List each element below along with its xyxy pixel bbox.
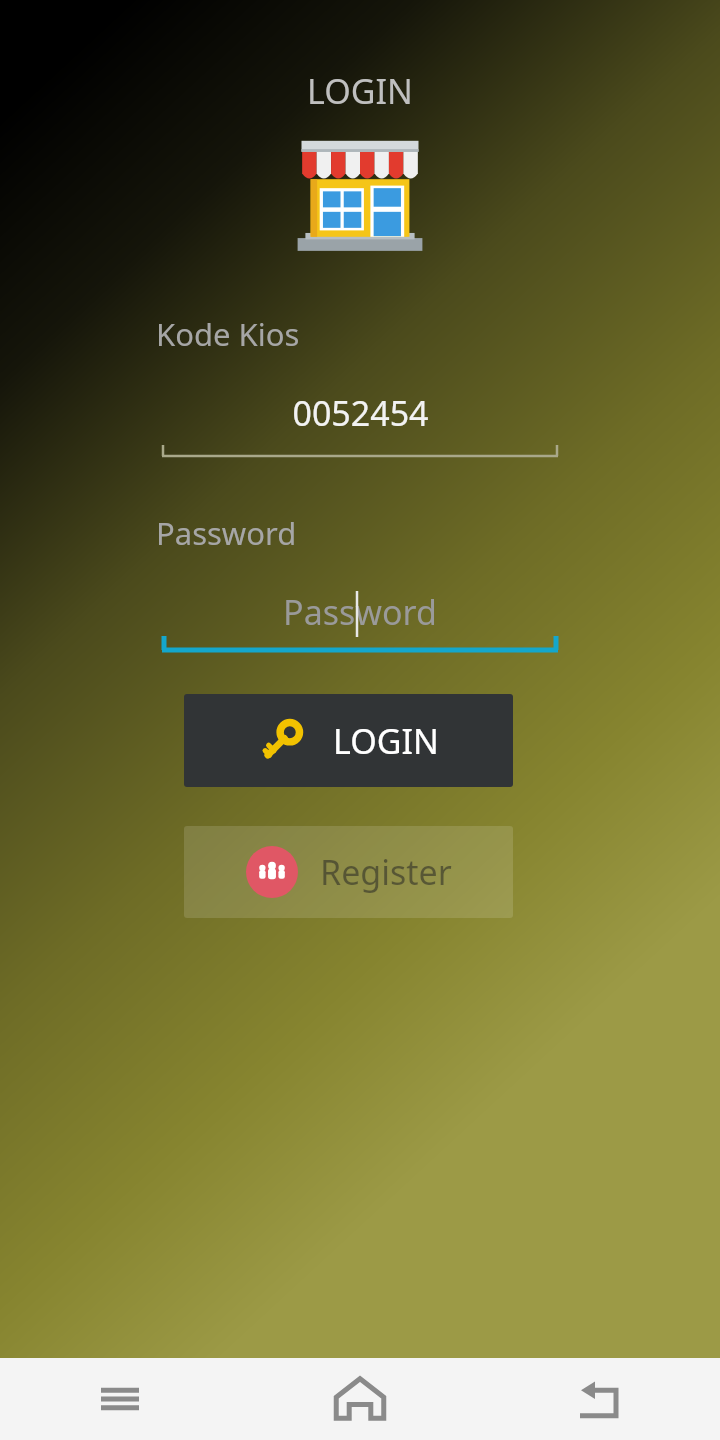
staticText: LOGIN <box>307 68 413 114</box>
staticText: Register <box>320 849 452 895</box>
staticText: LOGIN <box>333 718 439 764</box>
staticText: Password <box>156 512 297 554</box>
button[interactable]: 0052454 <box>162 390 558 458</box>
staticText: Password <box>283 589 437 635</box>
button[interactable]: LOGIN <box>184 694 513 787</box>
button[interactable]: Password <box>162 589 558 652</box>
staticText: Kode Kios <box>156 313 300 355</box>
button[interactable]: Register <box>184 826 513 918</box>
button[interactable]: Back <box>480 1358 720 1440</box>
staticText: 0052454 <box>292 390 429 436</box>
button[interactable]: Home <box>240 1358 480 1440</box>
button[interactable]: Recent apps <box>0 1358 240 1440</box>
